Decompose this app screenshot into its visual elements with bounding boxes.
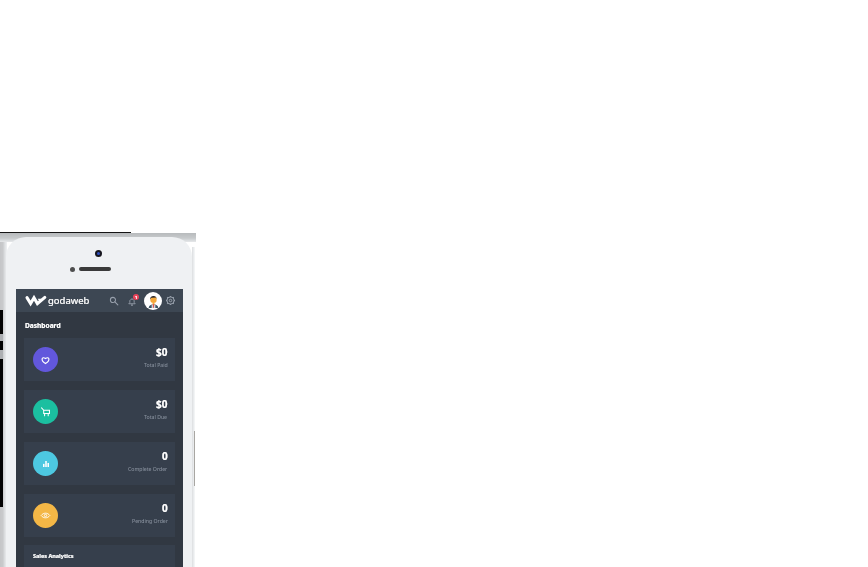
button[interactable]: $0 <box>24 338 175 381</box>
button[interactable]: Settings <box>164 294 177 307</box>
staticText: Total Due <box>144 413 168 420</box>
button[interactable]: $0 <box>24 390 175 433</box>
staticText: 0 <box>162 501 168 515</box>
staticText: godaweb <box>48 294 90 307</box>
staticText: Complete Order <box>128 465 168 472</box>
staticText: 0 <box>162 449 168 463</box>
staticText: $0 <box>156 397 168 411</box>
button[interactable]: Profile <box>144 292 162 310</box>
button[interactable]: 0 <box>24 494 175 537</box>
staticText: $0 <box>156 345 168 359</box>
staticText: Total Paid <box>144 361 168 368</box>
button[interactable]: Notifications <box>125 294 138 307</box>
staticText: 1 <box>135 295 138 300</box>
staticText: Sales Analytics <box>33 552 74 559</box>
button[interactable]: Search <box>107 294 120 307</box>
staticText: Pending Order <box>132 517 168 524</box>
staticText: Dashboard <box>25 321 61 330</box>
button[interactable]: 0 <box>24 442 175 485</box>
